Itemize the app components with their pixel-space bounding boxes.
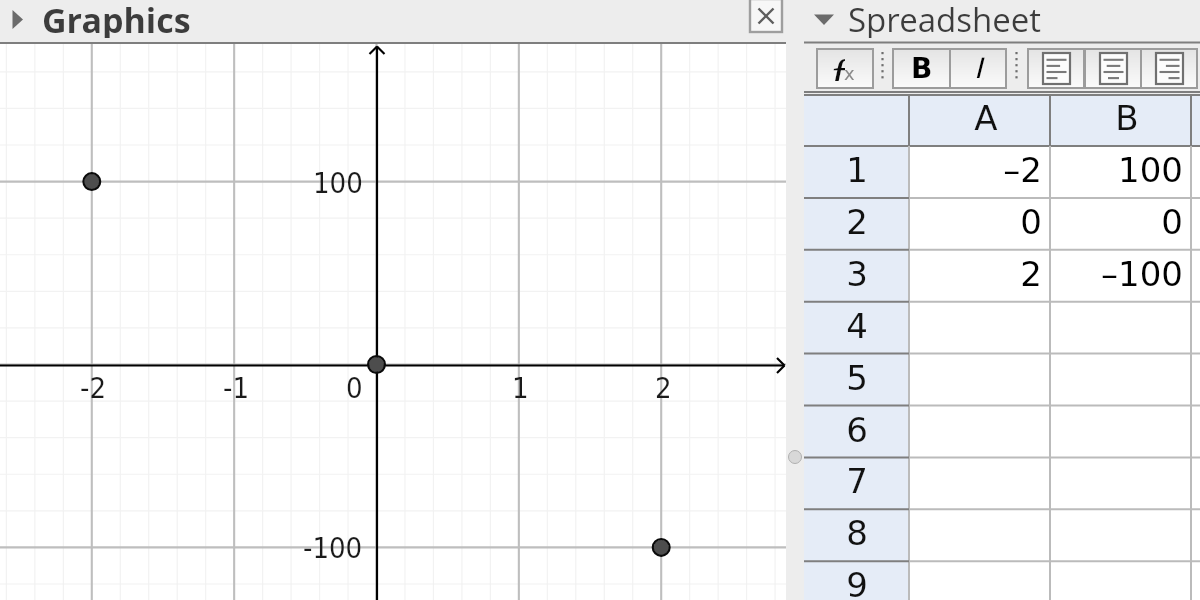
- button[interactable]: 5: [804, 354, 909, 406]
- button[interactable]: 0: [909, 198, 1042, 250]
- button[interactable]: Formula: [817, 49, 873, 88]
- staticText: 2: [1020, 254, 1042, 294]
- button[interactable]: A: [909, 94, 1050, 146]
- staticText: –100: [1101, 254, 1183, 294]
- staticText: ƒ: [828, 47, 845, 81]
- staticText: 9: [846, 565, 868, 600]
- button[interactable]: Align left: [1028, 49, 1084, 88]
- staticText: I: [974, 52, 983, 85]
- button[interactable]: Bold: [893, 49, 951, 88]
- staticText: Spreadsheet: [848, 0, 1041, 38]
- staticText: x: [844, 63, 855, 84]
- staticText: Graphics: [42, 0, 191, 38]
- button[interactable]: 8: [804, 509, 909, 561]
- staticText: 4: [846, 306, 868, 346]
- button[interactable]: Italic: [950, 49, 1006, 88]
- button[interactable]: 2: [909, 250, 1042, 302]
- button[interactable]: Graphics: [0, 0, 786, 41]
- staticText: 0: [1020, 202, 1042, 242]
- staticText: 100: [1118, 150, 1183, 190]
- staticText: -1: [223, 371, 250, 405]
- button[interactable]: Spreadsheet: [804, 0, 1200, 41]
- button[interactable]: 2: [804, 198, 909, 250]
- button[interactable]: Align right: [1141, 49, 1197, 88]
- button[interactable]: Align center: [1085, 49, 1141, 88]
- button[interactable]: 3: [804, 250, 909, 302]
- staticText: 8: [846, 513, 868, 553]
- staticText: -2: [80, 371, 107, 405]
- staticText: 0: [1161, 202, 1183, 242]
- staticText: 0: [346, 371, 363, 405]
- button[interactable]: –2: [909, 146, 1042, 198]
- staticText: 6: [846, 410, 868, 450]
- staticText: B: [911, 52, 933, 85]
- button[interactable]: –100: [1050, 250, 1183, 302]
- button[interactable]: 0: [1050, 198, 1183, 250]
- staticText: 1: [846, 150, 868, 190]
- button[interactable]: C: [1191, 94, 1200, 146]
- staticText: B: [1115, 98, 1139, 138]
- button[interactable]: 1: [804, 146, 909, 198]
- staticText: 2: [846, 202, 868, 242]
- staticText: 2: [655, 371, 672, 405]
- staticText: –2: [1003, 150, 1042, 190]
- button[interactable]: B: [1050, 94, 1191, 146]
- staticText: 7: [846, 461, 868, 501]
- staticText: 1: [512, 371, 529, 405]
- staticText: A: [974, 98, 998, 138]
- staticText: -100: [303, 531, 363, 565]
- button[interactable]: 100: [1050, 146, 1183, 198]
- staticText: 3: [846, 254, 868, 294]
- staticText: 5: [846, 358, 868, 398]
- button[interactable]: 9: [804, 561, 909, 600]
- staticText: 100: [313, 166, 363, 200]
- button[interactable]: 7: [804, 457, 909, 509]
- button[interactable]: 4: [804, 302, 909, 354]
- button[interactable]: Close Graphics view: [750, 0, 782, 32]
- button[interactable]: 6: [804, 406, 909, 458]
